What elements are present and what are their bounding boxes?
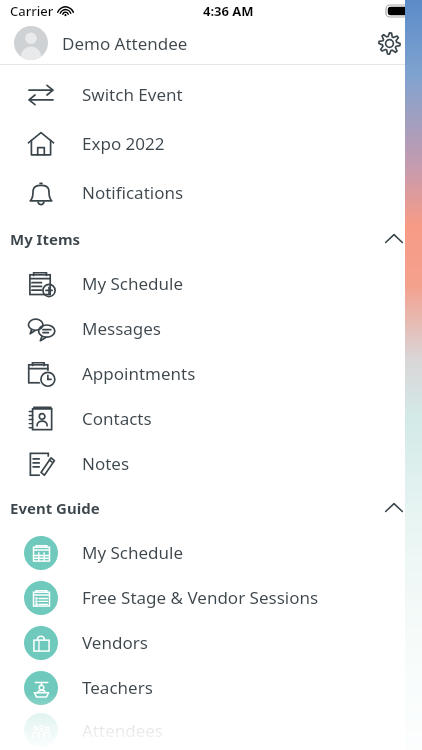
staticText: Carrier [10, 2, 54, 20]
staticText: Vendors [82, 631, 148, 654]
staticText: Event Guide [10, 498, 100, 518]
button[interactable]: Attendees [0, 710, 422, 750]
staticText: Demo Attendee [62, 32, 188, 55]
staticText: Free Stage & Vendor Sessions [82, 586, 319, 609]
button[interactable]: Demo Attendee [0, 22, 422, 64]
button[interactable]: My Schedule [0, 530, 422, 575]
staticText: Expo 2022 [82, 132, 165, 155]
button[interactable]: Collapse My Items [372, 217, 416, 261]
button[interactable]: Expo 2022 [0, 119, 422, 168]
button[interactable]: Contacts [0, 396, 422, 441]
staticText: Attendees [82, 719, 164, 742]
button[interactable]: Event Guide [0, 486, 422, 530]
button[interactable]: My Schedule [0, 261, 422, 306]
button[interactable]: Collapse Event Guide [372, 486, 416, 530]
button[interactable]: Switch Event [0, 70, 422, 119]
staticText: Teachers [82, 676, 153, 699]
staticText: Appointments [82, 362, 196, 385]
staticText: Contacts [82, 407, 152, 430]
button[interactable]: Appointments [0, 351, 422, 396]
button[interactable]: Teachers [0, 665, 422, 710]
staticText: 4:36 AM [203, 2, 254, 20]
button[interactable]: Free Stage & Vendor Sessions [0, 575, 422, 620]
button[interactable]: Notes [0, 441, 422, 486]
staticText: Notifications [82, 181, 184, 204]
button[interactable]: Notifications [0, 168, 422, 217]
button[interactable]: Messages [0, 306, 422, 351]
staticText: Switch Event [82, 83, 183, 106]
button[interactable]: Vendors [0, 620, 422, 665]
staticText: My Items [10, 229, 81, 249]
staticText: My Schedule [82, 541, 184, 564]
staticText: My Schedule [82, 272, 184, 295]
button[interactable]: My Items [0, 217, 422, 261]
staticText: Notes [82, 452, 130, 475]
staticText: Messages [82, 317, 162, 340]
button[interactable]: Settings [366, 22, 412, 64]
